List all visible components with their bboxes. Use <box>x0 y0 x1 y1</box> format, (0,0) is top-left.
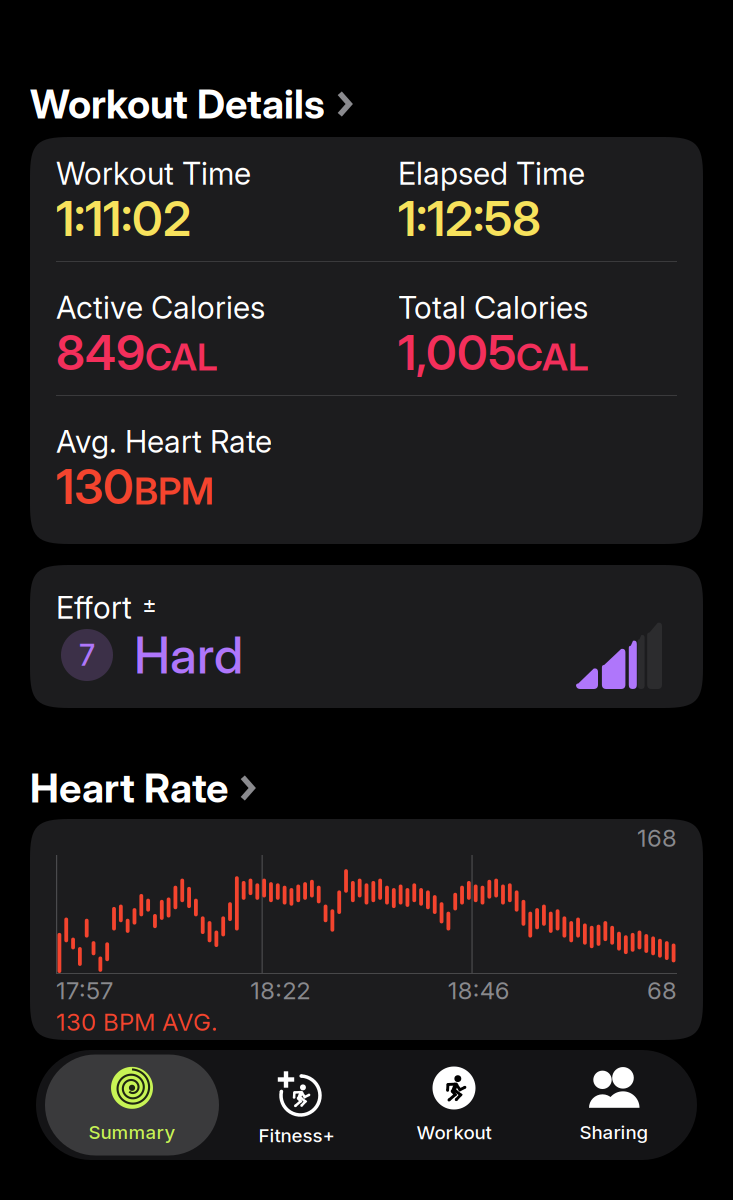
staticText: 7 <box>79 637 95 673</box>
button[interactable]: Workout Details <box>30 81 703 127</box>
staticText: 18:46 <box>448 976 510 1005</box>
staticText: Effort <box>56 589 132 626</box>
staticText: 1:12:58 <box>398 189 541 248</box>
button[interactable]: Sharing <box>534 1054 694 1155</box>
staticText: 68 <box>647 976 677 1005</box>
button[interactable]: Heart Rate <box>30 765 703 811</box>
button[interactable]: Fitness+ <box>219 1054 374 1155</box>
button[interactable]: Summary <box>45 1054 219 1155</box>
button[interactable]: Effort <box>30 565 703 708</box>
staticText: CAL <box>516 334 589 380</box>
staticText: Active Calories <box>56 289 265 326</box>
button[interactable]: Workout <box>374 1054 534 1155</box>
staticText: 1,005 <box>398 323 516 382</box>
staticText: 18:22 <box>250 976 310 1005</box>
staticText: Sharing <box>579 1121 648 1143</box>
staticText: Workout <box>416 1121 491 1144</box>
staticText: Total Calories <box>398 289 588 326</box>
staticText: CAL <box>145 334 218 380</box>
staticText: 130 BPM AVG. <box>56 1007 218 1036</box>
staticText: Elapsed Time <box>398 155 585 192</box>
staticText: ± <box>142 591 157 618</box>
staticText: Summary <box>88 1121 175 1143</box>
staticText: Hard <box>134 624 243 686</box>
staticText: Workout Details <box>30 80 325 128</box>
staticText: Workout Time <box>56 155 251 192</box>
staticText: Heart Rate <box>30 764 228 812</box>
staticText: 168 <box>637 823 677 852</box>
staticText: Avg. Heart Rate <box>56 423 272 460</box>
staticText: 130 <box>56 457 134 516</box>
staticText: 17:57 <box>56 976 113 1005</box>
staticText: BPM <box>134 468 214 514</box>
staticText: 1:11:02 <box>56 189 191 248</box>
button[interactable]: 168 <box>30 819 703 1040</box>
staticText: 849 <box>56 323 145 382</box>
staticText: Fitness+ <box>258 1124 334 1147</box>
